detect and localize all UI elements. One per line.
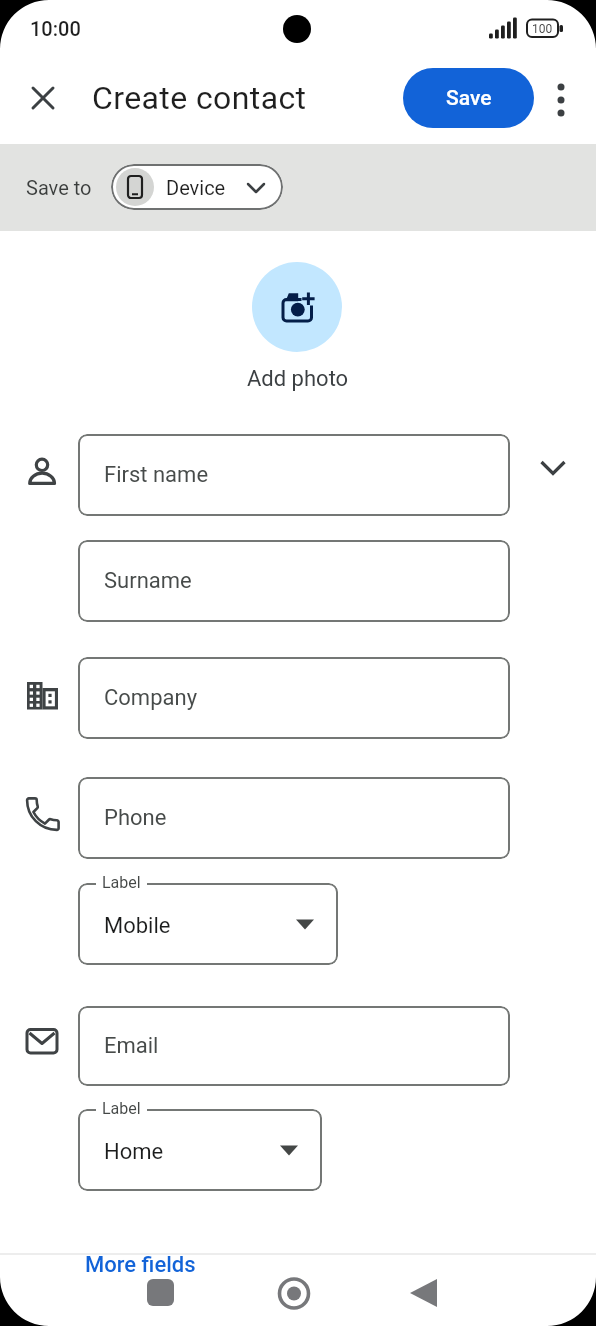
staticText: Add photo <box>247 366 349 392</box>
staticText: Label <box>102 1099 141 1118</box>
button[interactable] <box>252 262 342 352</box>
staticText: 10:00 <box>30 17 81 40</box>
staticText: Home <box>104 1139 164 1165</box>
button[interactable] <box>398 1265 454 1321</box>
staticText: Mobile <box>104 913 171 939</box>
staticText: First name <box>104 462 209 488</box>
staticText: Device <box>166 176 226 199</box>
staticText: Phone <box>104 805 167 831</box>
button[interactable]: Mobile <box>78 883 338 965</box>
button[interactable] <box>21 76 65 120</box>
staticText: Create contact <box>92 79 307 117</box>
button[interactable]: First name <box>78 434 510 516</box>
staticText: Email <box>104 1033 159 1059</box>
button[interactable]: Surname <box>78 540 510 622</box>
button[interactable] <box>531 445 575 489</box>
button[interactable]: Save <box>403 68 534 128</box>
button[interactable] <box>268 1265 324 1321</box>
staticText: Surname <box>104 568 192 594</box>
button[interactable]: Phone <box>78 777 510 859</box>
button[interactable]: More fields <box>85 1252 205 1284</box>
staticText: More fields <box>85 1252 196 1278</box>
staticText: 100 <box>532 22 553 36</box>
button[interactable]: Company <box>78 657 510 739</box>
button[interactable] <box>133 1265 189 1321</box>
button[interactable]: Device <box>111 164 283 210</box>
staticText: Save to <box>26 176 92 199</box>
staticText: Company <box>104 685 198 711</box>
button[interactable] <box>540 78 582 122</box>
button[interactable]: Email <box>78 1006 510 1086</box>
button[interactable]: Home <box>78 1109 322 1191</box>
staticText: Save <box>446 86 492 111</box>
staticText: Label <box>102 873 141 892</box>
